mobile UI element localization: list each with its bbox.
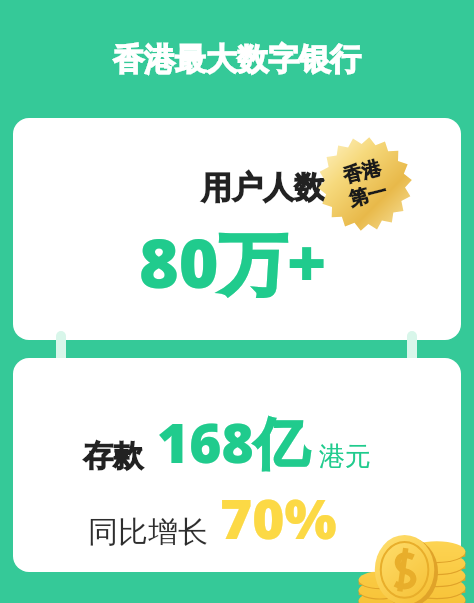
staticText: 存款 (83, 437, 143, 475)
button[interactable]: 用户人数 (13, 118, 461, 340)
staticText: 第一 (347, 179, 389, 212)
staticText: 70% (220, 480, 337, 555)
staticText: 用户人数 (201, 168, 325, 207)
staticText: 港元 (319, 440, 371, 473)
staticText: 168亿 (157, 404, 309, 479)
staticText: 同比增长 (88, 513, 208, 551)
staticText: 香港最大数字银行 (113, 40, 361, 79)
staticText: 香港 (341, 156, 383, 189)
button[interactable]: 存款 (13, 358, 461, 572)
staticText: 80万+ (139, 215, 327, 308)
button[interactable]: 香港第一 徽章 (318, 137, 412, 231)
